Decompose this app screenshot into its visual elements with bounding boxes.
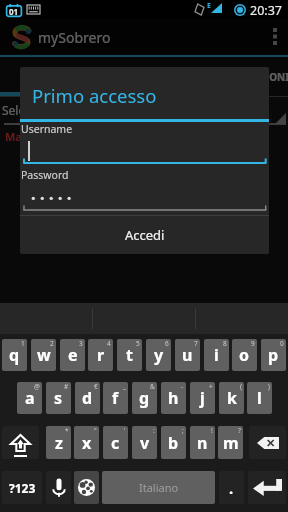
- staticText: t: [126, 344, 133, 366]
- button[interactable]: Period: [219, 471, 244, 504]
- button[interactable]: a: [17, 382, 42, 414]
- staticText: j: [200, 387, 205, 409]
- staticText: +: [209, 382, 213, 391]
- staticText: y: [154, 344, 164, 366]
- staticText: x: [82, 432, 92, 454]
- staticText: u: [182, 344, 193, 366]
- button[interactable]: l: [247, 382, 272, 414]
- button[interactable]: u: [175, 339, 200, 371]
- staticText: v: [140, 432, 150, 454]
- staticText: 8: [223, 339, 227, 348]
- button[interactable]: Change language: [74, 471, 99, 504]
- staticText: s: [54, 387, 63, 409]
- button[interactable]: x: [74, 426, 99, 459]
- staticText: ?: [238, 426, 241, 435]
- staticText: 4: [107, 339, 111, 348]
- button[interactable]: Italiano: [102, 471, 215, 504]
- staticText: COMUNICAZIONI: [203, 70, 288, 84]
- staticText: 0: [280, 339, 284, 348]
- button[interactable]: s: [46, 382, 71, 414]
- staticText: o: [239, 344, 250, 366]
- staticText: Primo accesso: [32, 83, 157, 108]
- staticText: ;: [182, 426, 184, 435]
- staticText: w: [37, 344, 51, 366]
- staticText: c: [111, 432, 120, 454]
- button[interactable]: h: [161, 382, 186, 414]
- button[interactable]: p: [261, 339, 286, 371]
- button[interactable]: t: [117, 339, 142, 371]
- staticText: k: [227, 387, 237, 409]
- staticText: E: [207, 1, 211, 11]
- staticText: Italiano: [139, 480, 179, 495]
- staticText: e: [68, 344, 78, 366]
- staticText: *: [65, 426, 69, 435]
- button[interactable]: j: [190, 382, 215, 414]
- staticText: !: [211, 426, 213, 435]
- staticText: a: [25, 387, 35, 409]
- button[interactable]: e: [60, 339, 85, 371]
- button[interactable]: m: [218, 426, 243, 459]
- button[interactable]: c: [103, 426, 128, 459]
- staticText: #: [64, 382, 69, 391]
- staticText: _: [123, 382, 126, 391]
- staticText: n: [197, 432, 208, 454]
- button[interactable]: b: [161, 426, 186, 459]
- staticText: 2: [50, 339, 54, 348]
- staticText: ): [268, 382, 270, 391]
- staticText: .: [229, 478, 234, 498]
- staticText: r: [97, 344, 105, 366]
- button[interactable]: f: [103, 382, 128, 414]
- button[interactable]: z: [46, 426, 71, 459]
- button[interactable]: Enter: [248, 471, 286, 504]
- button[interactable]: Voice input: [46, 471, 71, 504]
- button[interactable]: i: [204, 339, 229, 371]
- button[interactable]: o: [232, 339, 257, 371]
- staticText: ": [94, 426, 97, 435]
- button[interactable]: n: [190, 426, 215, 459]
- staticText: 6: [165, 339, 169, 348]
- staticText: Accedi: [125, 226, 165, 244]
- button[interactable]: w: [31, 339, 56, 371]
- staticText: 01: [9, 6, 19, 17]
- staticText: i: [214, 344, 219, 366]
- button[interactable]: r: [88, 339, 113, 371]
- staticText: m: [223, 432, 239, 454]
- staticText: (: [240, 382, 242, 391]
- staticText: 3: [79, 339, 83, 348]
- staticText: ': [124, 426, 126, 435]
- staticText: Password: [21, 168, 69, 182]
- staticText: z: [55, 432, 63, 454]
- button[interactable]: y: [146, 339, 171, 371]
- button[interactable]: More options: [262, 19, 288, 54]
- staticText: Username: [21, 122, 73, 136]
- staticText: @: [34, 382, 40, 391]
- staticText: &: [150, 382, 155, 391]
- staticText: :: [153, 426, 155, 435]
- staticText: ?123: [9, 480, 36, 496]
- staticText: 1: [21, 339, 25, 348]
- staticText: 7: [194, 339, 198, 348]
- staticText: h: [168, 387, 179, 409]
- staticText: 20:37: [250, 2, 282, 19]
- staticText: -: [181, 382, 184, 391]
- button[interactable]: Shift: [2, 426, 39, 459]
- button[interactable]: Symbols: [2, 471, 42, 504]
- button[interactable]: v: [132, 426, 157, 459]
- staticText: f: [112, 387, 119, 409]
- button[interactable]: d: [75, 382, 100, 414]
- button[interactable]: Accedi: [20, 216, 269, 254]
- button[interactable]: g: [132, 382, 157, 414]
- staticText: b: [168, 432, 179, 454]
- staticText: Materia: [5, 129, 49, 144]
- staticText: Seleziona: [2, 102, 56, 118]
- button[interactable]: k: [219, 382, 244, 414]
- staticText: 5: [136, 339, 140, 348]
- button[interactable]: Backspace: [249, 426, 286, 459]
- staticText: 9: [251, 339, 255, 348]
- staticText: l: [257, 387, 262, 409]
- staticText: mySobrero: [38, 28, 111, 47]
- button[interactable]: q: [2, 339, 27, 371]
- staticText: €: [94, 382, 98, 391]
